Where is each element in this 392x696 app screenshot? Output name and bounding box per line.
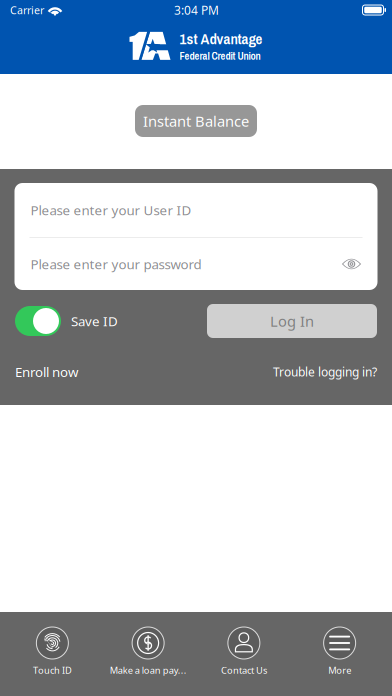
button[interactable]: Touch ID bbox=[4, 612, 100, 696]
button[interactable]: Instant Balance bbox=[135, 105, 257, 137]
button[interactable]: Enroll now bbox=[15, 363, 78, 381]
button[interactable]: Save ID bbox=[15, 306, 118, 336]
staticText: Enroll now bbox=[15, 363, 78, 381]
staticText: Trouble logging in? bbox=[273, 364, 377, 380]
staticText: 3:04 PM bbox=[174, 2, 219, 18]
button[interactable]: Log In bbox=[207, 304, 377, 338]
button[interactable]: Make a loan pay... bbox=[100, 612, 196, 696]
staticText: More bbox=[328, 664, 351, 676]
button[interactable]: More bbox=[292, 612, 388, 696]
button[interactable]: Please enter your User ID bbox=[14, 183, 377, 237]
staticText: Touch ID bbox=[33, 664, 72, 676]
staticText: Carrier bbox=[10, 3, 44, 17]
staticText: 1st Advantage bbox=[179, 29, 262, 49]
button[interactable]: Please enter your password bbox=[14, 238, 377, 290]
staticText: Please enter your User ID bbox=[30, 201, 191, 219]
button[interactable]: Trouble logging in? bbox=[273, 364, 377, 380]
staticText: Log In bbox=[270, 311, 314, 331]
staticText: Instant Balance bbox=[143, 111, 249, 131]
staticText: Contact Us bbox=[221, 664, 267, 676]
staticText: Please enter your password bbox=[30, 255, 201, 273]
staticText: Make a loan pay... bbox=[110, 664, 187, 676]
button[interactable]: Contact Us bbox=[196, 612, 292, 696]
staticText: Save ID bbox=[71, 312, 118, 330]
staticText: Federal Credit Union bbox=[179, 49, 260, 63]
